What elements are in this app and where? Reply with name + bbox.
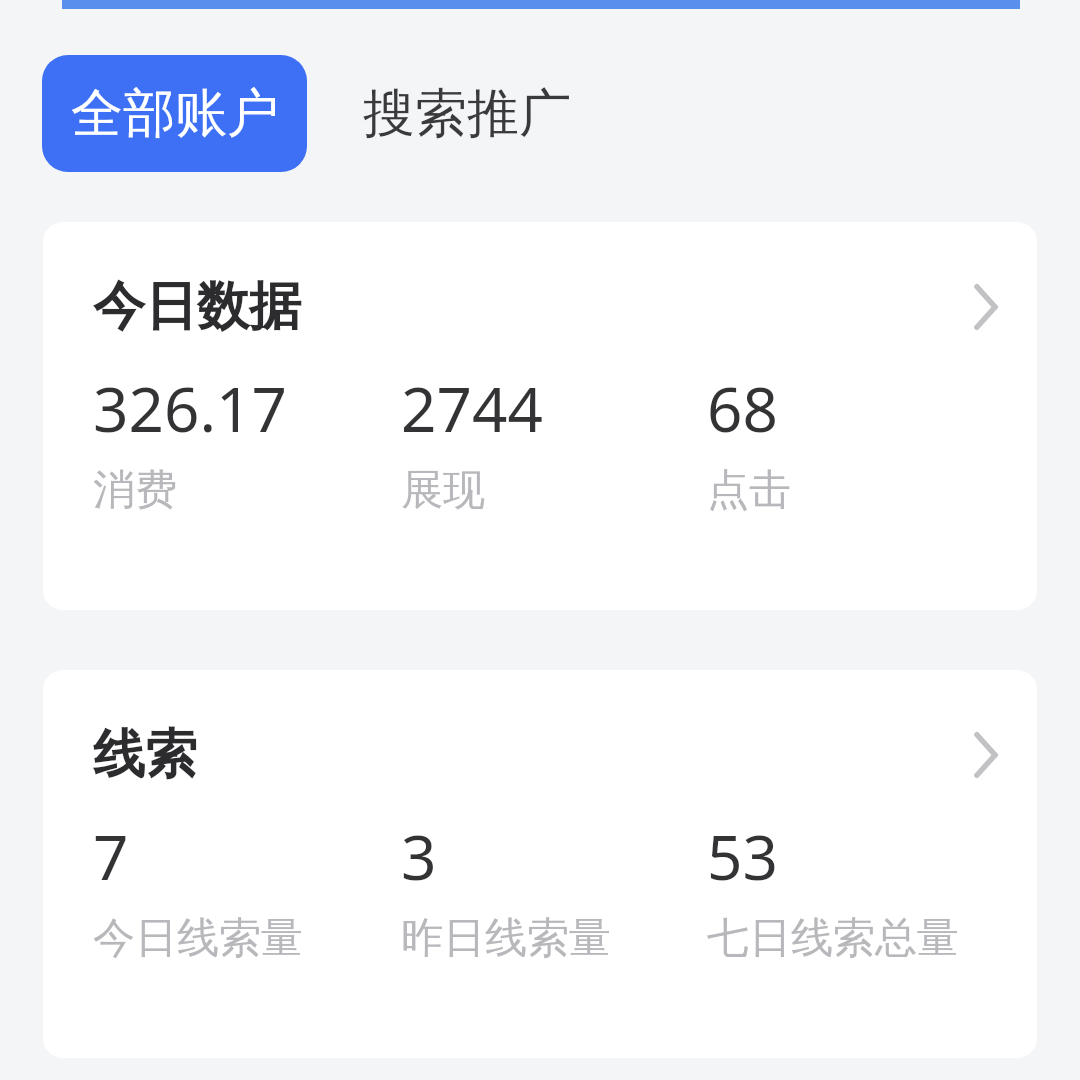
button[interactable]: 今日数据 bbox=[43, 222, 1037, 610]
staticText: 53 bbox=[707, 814, 778, 898]
staticText: 今日数据 bbox=[93, 274, 301, 340]
staticText: 线索 bbox=[93, 722, 197, 788]
button[interactable]: 全部账户 bbox=[42, 55, 307, 172]
staticText: 消费 bbox=[93, 464, 177, 517]
other: 今日数据详情 bbox=[973, 284, 999, 330]
staticText: 点击 bbox=[707, 464, 791, 517]
staticText: 3 bbox=[401, 814, 437, 898]
staticText: 今日线索量 bbox=[93, 912, 303, 965]
staticText: 昨日线索量 bbox=[401, 912, 611, 965]
staticText: 326.17 bbox=[93, 366, 287, 450]
staticText: 七日线索总量 bbox=[707, 912, 959, 965]
staticText: 68 bbox=[707, 366, 778, 450]
staticText: 2744 bbox=[401, 366, 543, 450]
staticText: 搜索推广 bbox=[363, 81, 571, 147]
staticText: 展现 bbox=[401, 464, 485, 517]
other: 线索详情 bbox=[973, 732, 999, 778]
button[interactable]: 线索 bbox=[43, 670, 1037, 1058]
staticText: 全部账户 bbox=[71, 81, 279, 147]
staticText: 7 bbox=[93, 814, 129, 898]
button[interactable]: 搜索推广 bbox=[307, 55, 627, 172]
